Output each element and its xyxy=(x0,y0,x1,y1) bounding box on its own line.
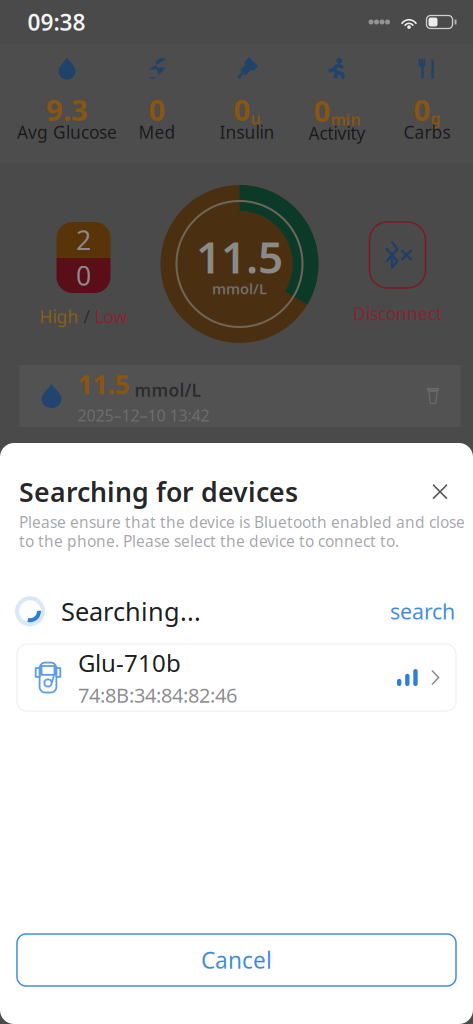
staticText: to the phone. Please select the device t… xyxy=(19,530,399,551)
staticText: Carbs xyxy=(403,120,450,143)
button[interactable]: Cancel xyxy=(17,934,456,986)
staticText: u xyxy=(250,108,260,129)
staticText: 0 xyxy=(313,91,330,130)
button[interactable]: search xyxy=(390,597,455,625)
staticText: 2 xyxy=(76,222,91,258)
staticText: Avg Glucose xyxy=(17,120,117,143)
staticText: g xyxy=(430,108,440,129)
staticText: / xyxy=(83,305,89,328)
staticText: mmol/L xyxy=(134,379,200,402)
staticText: 11.5 xyxy=(77,366,129,402)
staticText: High xyxy=(39,305,78,328)
staticText: 0 xyxy=(233,90,250,129)
staticText: mmol/L xyxy=(212,279,267,298)
staticText: Please ensure that the device is Bluetoo… xyxy=(19,511,465,532)
staticText: 0 xyxy=(148,90,165,129)
staticText: 0 xyxy=(413,90,430,129)
staticText: search xyxy=(390,597,455,625)
staticText: 11.5 xyxy=(196,227,283,286)
staticText: Med xyxy=(138,120,175,143)
staticText: 09:38 xyxy=(27,7,85,37)
staticText: min xyxy=(330,109,360,130)
button[interactable]: Close xyxy=(425,477,455,507)
staticText: Low xyxy=(94,305,127,328)
staticText: Activity xyxy=(308,121,365,144)
button[interactable]: Glu-710b xyxy=(17,644,456,711)
staticText: 2025–12–10 13:42 xyxy=(77,405,209,426)
staticText: Insulin xyxy=(219,120,274,143)
staticText: 9.3 xyxy=(46,90,88,129)
staticText: 74:8B:34:84:82:46 xyxy=(78,682,237,708)
staticText: 0 xyxy=(76,258,91,293)
staticText: Glu-710b xyxy=(78,647,181,679)
staticText: Disconnect xyxy=(353,302,442,325)
staticText: Searching for devices xyxy=(19,474,298,509)
staticText: Searching... xyxy=(61,594,201,628)
staticText: Cancel xyxy=(201,945,272,975)
